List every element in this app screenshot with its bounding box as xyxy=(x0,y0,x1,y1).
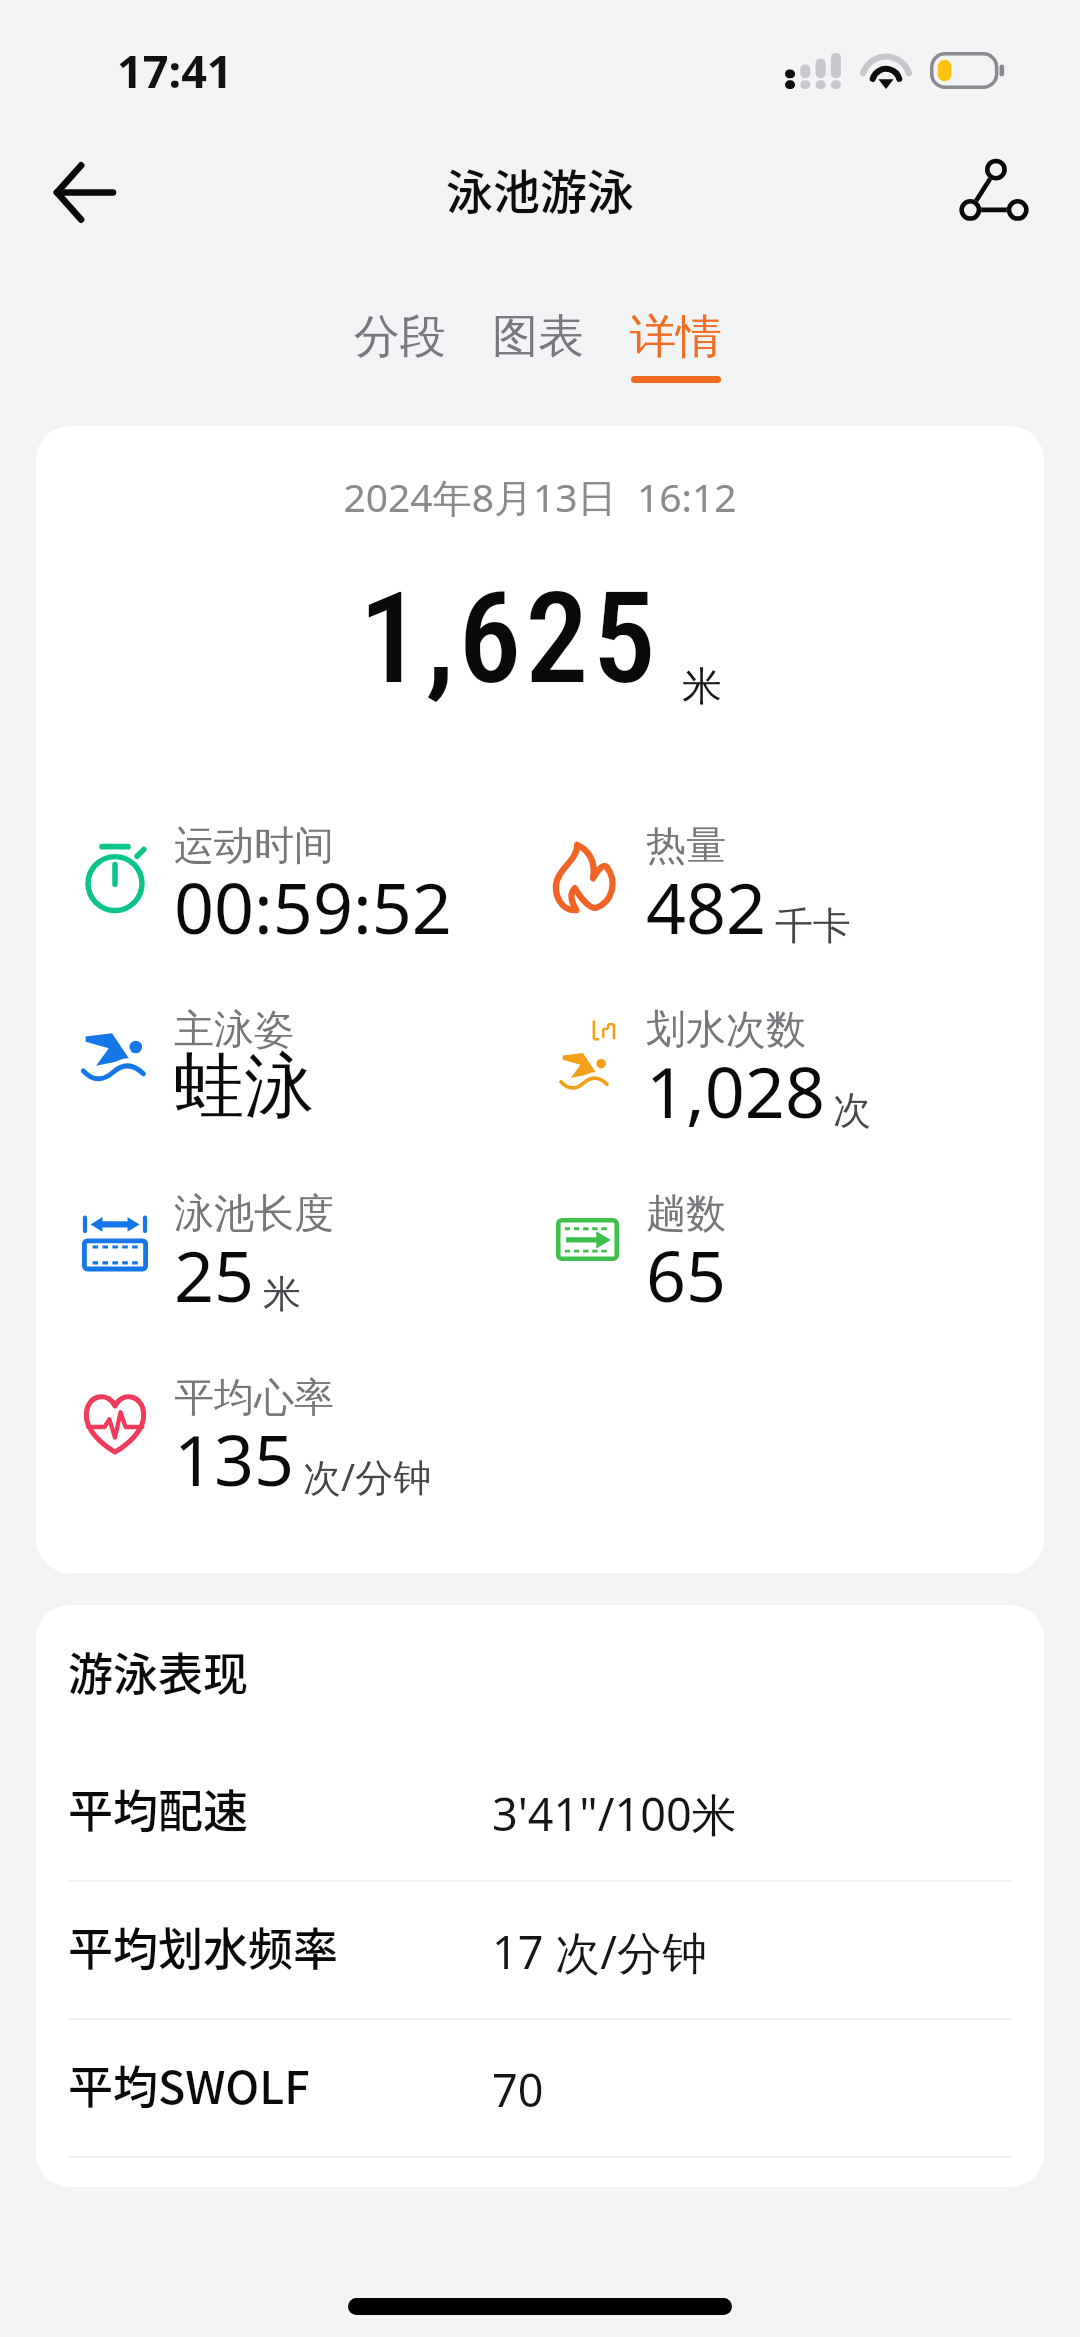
staticText: 1,625 xyxy=(359,565,660,713)
staticText: 次/分钟 xyxy=(303,1450,432,1502)
staticText: 17 次/分钟 xyxy=(492,1921,707,1982)
staticText: 00:59:52 xyxy=(174,859,452,954)
staticText: 泳池长度 xyxy=(174,1188,334,1238)
staticText: 游泳表现 xyxy=(68,1639,249,1704)
staticText: 17:41 xyxy=(117,40,233,101)
staticText: 70 xyxy=(492,2059,544,2120)
staticText: 1,028 xyxy=(646,1043,825,1138)
staticText: 平均心率 xyxy=(174,1372,334,1422)
staticText: 分段 xyxy=(354,308,446,366)
staticText: 热量 xyxy=(646,820,726,870)
staticText: 千卡 xyxy=(775,902,851,950)
staticText: 米 xyxy=(263,1270,301,1318)
button[interactable]: 平均配速 xyxy=(36,1744,1044,1880)
staticText: 135 xyxy=(174,1411,295,1506)
button[interactable]: 平均划水频率 xyxy=(36,1882,1044,2018)
staticText: 次 xyxy=(833,1086,871,1134)
button[interactable]: Back xyxy=(24,133,142,251)
button[interactable]: 详情 xyxy=(616,308,736,383)
button[interactable]: 图表 xyxy=(478,308,598,383)
staticText: 图表 xyxy=(492,308,584,366)
staticText: 482 xyxy=(646,859,767,954)
button[interactable]: Share xyxy=(935,133,1053,251)
staticText: 趟数 xyxy=(646,1188,726,1238)
staticText: 蛙泳 xyxy=(174,1043,314,1131)
staticText: 65 xyxy=(646,1227,727,1322)
button[interactable]: 分段 xyxy=(340,308,460,383)
staticText: 平均配速 xyxy=(68,1776,492,1841)
staticText: 平均划水频率 xyxy=(68,1914,492,1979)
staticText: 泳池游泳 xyxy=(446,154,634,222)
button[interactable]: 平均SWOLF xyxy=(36,2020,1044,2156)
staticText: 运动时间 xyxy=(174,820,334,870)
staticText: 2024年8月13日 16:12 xyxy=(36,470,1044,523)
staticText: 平均SWOLF xyxy=(68,2052,492,2117)
staticText: 米 xyxy=(682,661,722,711)
staticText: 划水次数 xyxy=(646,1004,806,1054)
staticText: 详情 xyxy=(630,308,722,366)
staticText: 主泳姿 xyxy=(174,1004,294,1054)
staticText: 25 xyxy=(174,1227,255,1322)
staticText: 3'41"/100米 xyxy=(492,1783,737,1844)
